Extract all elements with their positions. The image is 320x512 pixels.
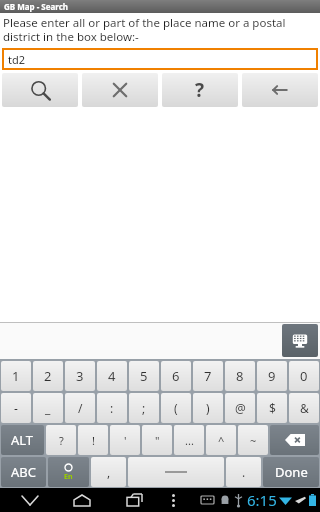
button[interactable]: ? <box>46 425 76 455</box>
staticText: td2 <box>8 52 26 67</box>
staticText: 5 <box>140 367 148 385</box>
button[interactable]: , <box>91 457 126 487</box>
button[interactable]: Menu <box>160 488 186 512</box>
staticText: 1 <box>12 367 20 385</box>
staticText: 3 <box>76 367 84 385</box>
button[interactable]: . <box>226 457 261 487</box>
button[interactable]: " <box>142 425 172 455</box>
button[interactable]: 1 <box>1 361 31 391</box>
staticText: . <box>242 464 246 480</box>
staticText: ! <box>92 433 95 448</box>
button[interactable]: 6 <box>161 361 191 391</box>
button[interactable]: $ <box>257 393 287 423</box>
staticText: / <box>78 400 83 416</box>
button[interactable]: Back <box>242 73 318 107</box>
button[interactable]: 5 <box>129 361 159 391</box>
staticText: GB Map - Search <box>4 1 69 12</box>
button[interactable]: : <box>97 393 127 423</box>
button[interactable]: 2 <box>33 361 63 391</box>
button[interactable]: Done <box>263 457 319 487</box>
button[interactable]: ( <box>161 393 191 423</box>
button[interactable]: ' <box>110 425 140 455</box>
staticText: ' <box>124 433 127 448</box>
button[interactable]: ^ <box>206 425 236 455</box>
button[interactable]: 3 <box>65 361 95 391</box>
button[interactable]: @ <box>225 393 255 423</box>
staticText: 2 <box>44 367 52 385</box>
button[interactable]: / <box>65 393 95 423</box>
button[interactable]: Backspace <box>270 425 319 455</box>
staticText: ? <box>59 433 64 448</box>
staticText: 4 <box>108 367 116 385</box>
staticText: Please enter all or part of the place na… <box>3 15 317 44</box>
staticText: 0 <box>300 367 308 385</box>
button[interactable]: ~ <box>238 425 268 455</box>
button[interactable]: ALT <box>1 425 44 455</box>
staticText: @ <box>235 400 246 416</box>
button[interactable]: Clear <box>82 73 158 107</box>
staticText: ABC <box>11 463 36 481</box>
button[interactable]: Recent apps <box>108 488 160 512</box>
staticText: , <box>107 464 111 480</box>
button[interactable]: 8 <box>225 361 255 391</box>
staticText: 7 <box>204 367 212 385</box>
button[interactable]: Home <box>56 488 108 512</box>
staticText: 8 <box>236 367 244 385</box>
button[interactable]: td2 <box>4 50 316 68</box>
button[interactable]: Space <box>128 457 224 487</box>
button[interactable]: Change language <box>48 457 89 487</box>
staticText: 6:15 <box>247 490 277 510</box>
staticText: 6 <box>172 367 180 385</box>
button[interactable]: Keyboard options <box>282 324 318 357</box>
staticText: ; <box>142 400 146 416</box>
button[interactable]: - <box>1 393 31 423</box>
button[interactable]: 4 <box>97 361 127 391</box>
staticText: : <box>110 400 114 416</box>
staticText: Done <box>275 463 308 481</box>
staticText: _ <box>45 400 51 416</box>
button[interactable]: _ <box>33 393 63 423</box>
staticText: ~ <box>250 433 257 448</box>
staticText: ^ <box>218 433 225 448</box>
button[interactable]: ? <box>162 73 238 107</box>
button[interactable]: & <box>289 393 319 423</box>
staticText: - <box>14 400 18 416</box>
staticText: " <box>155 433 160 448</box>
staticText: & <box>300 400 309 416</box>
button[interactable]: Search <box>2 73 78 107</box>
button[interactable]: 0 <box>289 361 319 391</box>
staticText: 9 <box>268 367 276 385</box>
button[interactable]: 9 <box>257 361 287 391</box>
button[interactable]: Hide keyboard <box>4 488 56 512</box>
staticText: ... <box>185 433 194 448</box>
staticText: ? <box>195 77 205 103</box>
button[interactable]: ! <box>78 425 108 455</box>
button[interactable]: 7 <box>193 361 223 391</box>
staticText: ( <box>174 400 178 416</box>
staticText: $ <box>269 400 276 416</box>
staticText: ALT <box>11 431 34 449</box>
button[interactable]: ABC <box>1 457 46 487</box>
button[interactable]: ... <box>174 425 204 455</box>
button[interactable]: ) <box>193 393 223 423</box>
button[interactable]: ; <box>129 393 159 423</box>
staticText: En <box>64 472 73 482</box>
staticText: ) <box>206 400 210 416</box>
